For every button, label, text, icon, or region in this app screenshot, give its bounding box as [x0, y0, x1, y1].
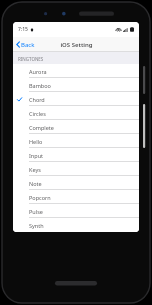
staticText: Keys [29, 166, 41, 173]
staticText: Back [21, 41, 35, 49]
staticText: Circles [29, 110, 46, 117]
button[interactable]: Circles [13, 106, 139, 120]
button[interactable]: Back [13, 37, 39, 52]
staticText: Note [29, 180, 42, 187]
button[interactable]: Popcorn [13, 190, 139, 204]
staticText: iOS Setting [60, 41, 93, 49]
button[interactable]: Input [13, 148, 139, 162]
button[interactable]: Complete [13, 120, 139, 134]
staticText: Hello [29, 138, 43, 145]
button[interactable]: Hello [13, 134, 139, 148]
button[interactable]: Synth [13, 218, 139, 232]
button[interactable]: Note [13, 176, 139, 190]
button[interactable]: Pulse [13, 204, 139, 218]
staticText: Aurora [29, 68, 47, 75]
button[interactable]: Aurora [13, 64, 139, 78]
button[interactable]: Keys [13, 162, 139, 176]
button[interactable]: Chord [13, 92, 139, 106]
staticText: 7:15 [18, 26, 28, 33]
staticText: Popcorn [29, 194, 51, 201]
button[interactable]: Bamboo [13, 78, 139, 92]
staticText: Input [29, 152, 44, 159]
staticText: RINGTONES [18, 56, 44, 62]
staticText: Bamboo [29, 82, 51, 89]
staticText: Chord [29, 96, 45, 103]
staticText: Complete [29, 124, 54, 131]
staticText: Pulse [29, 208, 43, 215]
staticText: Synth [29, 222, 44, 229]
